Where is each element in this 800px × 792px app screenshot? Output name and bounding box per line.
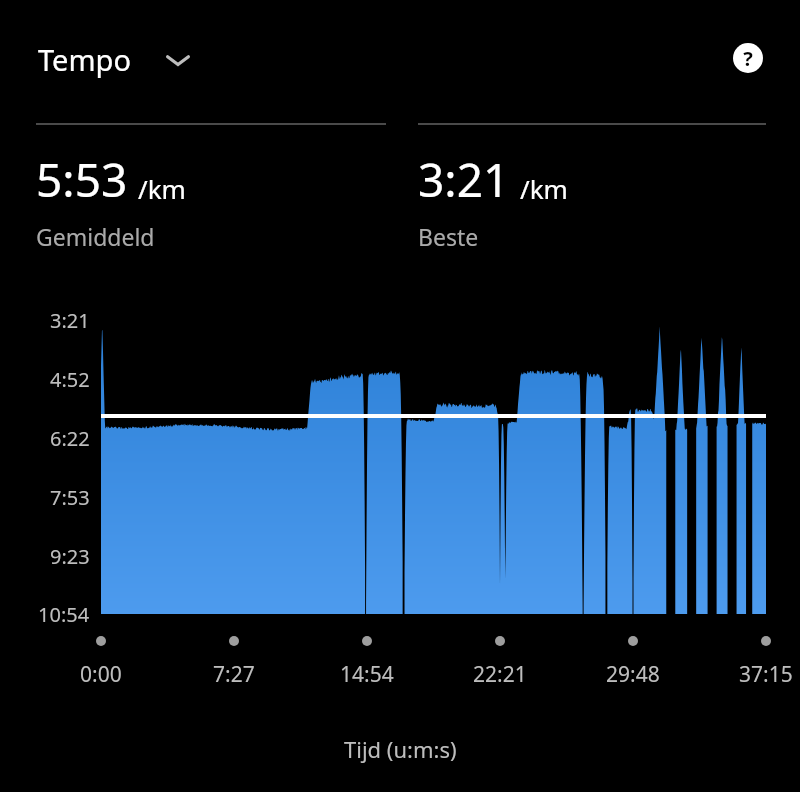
staticText: Tijd (u:m:s) [344,734,457,764]
staticText: Beste [418,221,479,252]
staticText: 3:21 [50,307,90,334]
staticText: 29:48 [606,660,660,689]
staticText: 7:53 [50,484,90,511]
staticText: 22:21 [473,660,527,689]
staticText: 0:00 [80,660,122,689]
button[interactable]: Help [722,32,774,84]
staticText: 3:21 [418,148,510,211]
staticText: Tempo [38,40,131,79]
staticText: 37:15 [739,660,793,689]
staticText: 4:52 [50,366,90,393]
staticText: /km [138,171,186,206]
staticText: /km [520,171,568,206]
button[interactable]: Tempo [36,36,193,83]
staticText: ? [743,45,753,72]
staticText: 6:22 [50,425,90,452]
staticText: Gemiddeld [36,221,155,252]
staticText: 5:53 [36,148,128,211]
staticText: 10:54 [38,601,90,628]
staticText: 7:27 [213,660,255,689]
staticText: 14:54 [340,660,394,689]
staticText: 9:23 [50,543,90,570]
